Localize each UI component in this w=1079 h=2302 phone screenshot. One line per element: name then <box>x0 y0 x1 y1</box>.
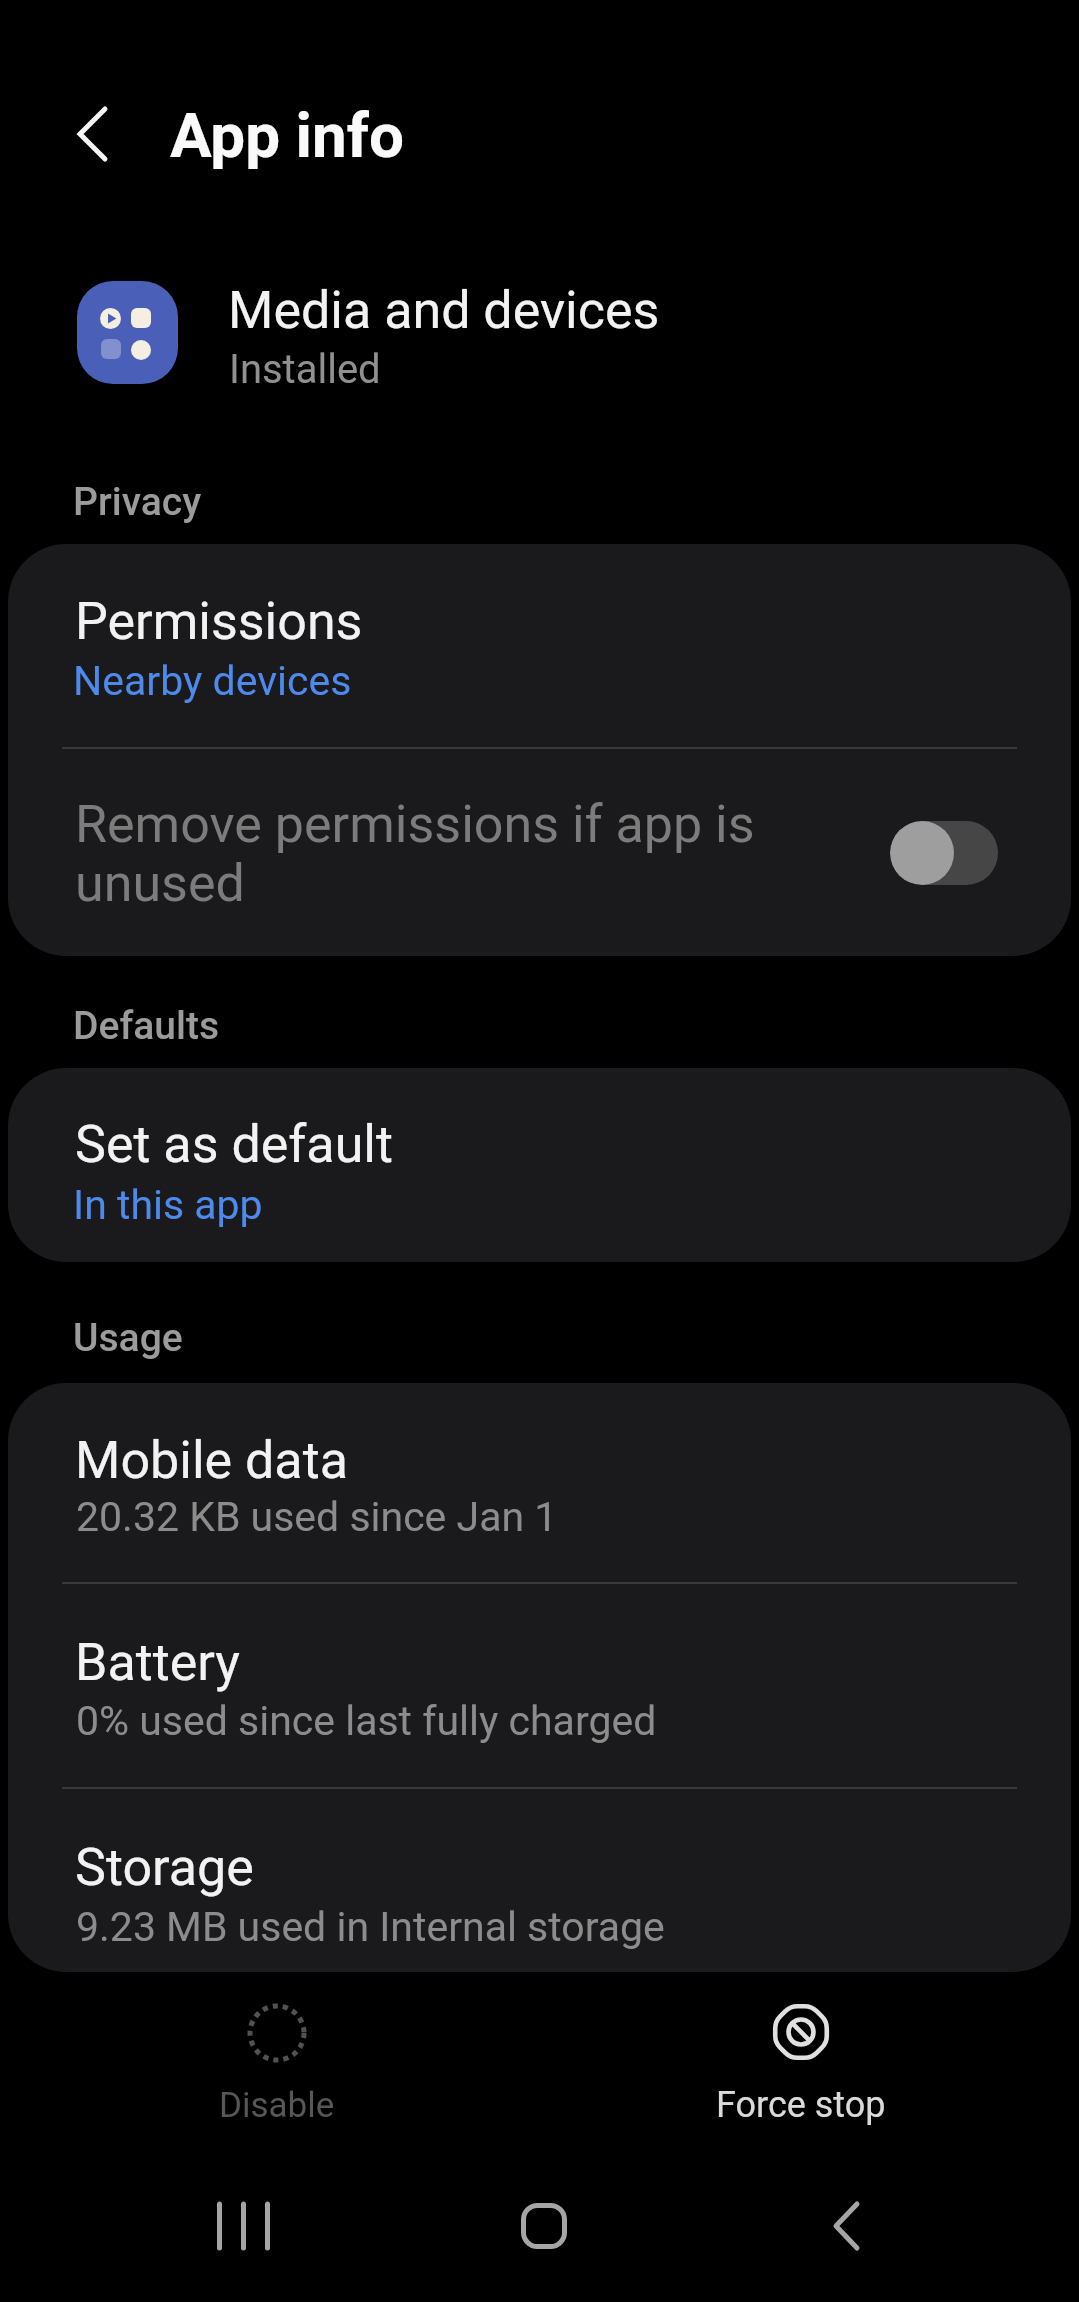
staticText: Force stop <box>716 2084 886 2126</box>
staticText: Permissions <box>75 591 363 652</box>
staticText: Battery <box>75 1632 240 1693</box>
staticText: Defaults <box>73 1003 220 1049</box>
button[interactable]: Remove permissions if app is <box>8 748 1071 956</box>
button[interactable]: Force stop <box>701 1995 901 2135</box>
button[interactable]: Permissions <box>8 544 1071 748</box>
staticText: Remove permissions if app is <box>75 794 755 855</box>
button[interactable] <box>771 2166 921 2286</box>
button[interactable]: Set as default <box>8 1068 1071 1262</box>
staticText: Storage <box>75 1837 254 1898</box>
staticText: 0% used since last fully charged <box>76 1697 657 1745</box>
button[interactable] <box>169 2166 319 2286</box>
staticText: Media and devices <box>228 280 660 341</box>
staticText: Set as default <box>75 1114 393 1175</box>
staticText: Installed <box>229 346 381 393</box>
staticText: 20.32 KB used since Jan 1 <box>76 1493 558 1541</box>
button[interactable] <box>469 2166 619 2286</box>
staticText: App info <box>170 99 404 172</box>
staticText: Privacy <box>73 479 202 525</box>
button[interactable] <box>48 90 138 180</box>
staticText: Disable <box>219 2085 335 2126</box>
button[interactable]: Storage <box>8 1788 1071 1972</box>
staticText: Usage <box>73 1315 183 1361</box>
staticText: unused <box>75 853 245 914</box>
staticText: Mobile data <box>75 1430 348 1491</box>
staticText: Nearby devices <box>73 657 352 705</box>
staticText: In this app <box>73 1181 263 1229</box>
button[interactable]: Battery <box>8 1583 1071 1788</box>
staticText: 9.23 MB used in Internal storage <box>76 1903 665 1951</box>
button[interactable]: Mobile data <box>8 1383 1071 1583</box>
button[interactable] <box>890 821 998 885</box>
button[interactable]: Disable <box>177 1995 377 2135</box>
